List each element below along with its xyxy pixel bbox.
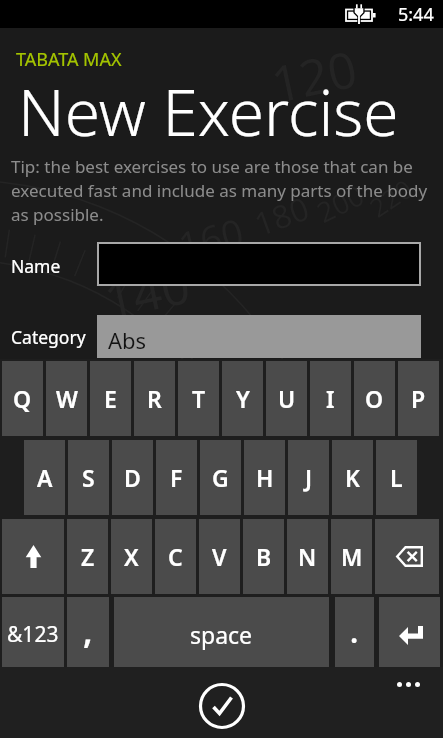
staticText: Q: [13, 383, 32, 414]
staticText: T: [192, 383, 206, 414]
button[interactable]: U: [266, 361, 307, 436]
staticText: space: [190, 619, 253, 650]
button[interactable]: &123: [2, 597, 64, 672]
staticText: A: [37, 462, 53, 493]
staticText: G: [212, 462, 229, 493]
staticText: Abs: [108, 325, 147, 355]
button[interactable]: M: [331, 519, 372, 594]
staticText: Z: [81, 541, 95, 572]
staticText: Tip: the best exercises to use are those…: [11, 155, 431, 226]
staticText: 160: [173, 205, 249, 271]
button[interactable]: Abs: [97, 315, 421, 358]
button[interactable]: F: [156, 440, 197, 515]
staticText: R: [147, 383, 162, 414]
button[interactable]: L: [376, 440, 417, 515]
button[interactable]: C: [155, 519, 196, 594]
staticText: L: [390, 462, 403, 493]
button[interactable]: More options: [389, 674, 428, 695]
button[interactable]: Q: [2, 361, 43, 436]
button[interactable]: K: [332, 440, 373, 515]
button[interactable]: D: [112, 440, 153, 515]
button[interactable]: Enter: [379, 597, 440, 672]
staticText: 140: [98, 250, 196, 334]
staticText: W: [56, 383, 78, 414]
staticText: P: [411, 383, 426, 414]
button[interactable]: J: [288, 440, 329, 515]
button[interactable]: O: [354, 361, 395, 436]
staticText: 120: [265, 34, 363, 118]
button[interactable]: [97, 242, 421, 286]
staticText: New Exercise: [18, 68, 399, 155]
button[interactable]: R: [134, 361, 175, 436]
staticText: V: [212, 541, 227, 572]
button[interactable]: Shift: [2, 519, 64, 594]
staticText: N: [298, 541, 317, 572]
staticText: C: [168, 541, 183, 572]
button[interactable]: P: [398, 361, 439, 436]
button[interactable]: A: [24, 440, 65, 515]
staticText: H: [256, 462, 274, 493]
staticText: TABATA MAX: [16, 47, 122, 72]
staticText: Category: [11, 325, 86, 349]
staticText: 220: [362, 170, 419, 225]
button[interactable]: B: [243, 519, 284, 594]
button[interactable]: T: [178, 361, 219, 436]
button[interactable]: ,: [67, 597, 109, 672]
staticText: D: [124, 462, 141, 493]
staticText: B: [256, 541, 272, 572]
button[interactable]: N: [287, 519, 328, 594]
button[interactable]: S: [68, 440, 109, 515]
staticText: E: [104, 383, 117, 414]
button[interactable]: G: [200, 440, 241, 515]
button[interactable]: W: [46, 361, 87, 436]
button[interactable]: I: [310, 361, 351, 436]
staticText: 200: [310, 175, 371, 231]
staticText: K: [345, 462, 360, 493]
staticText: Name: [11, 254, 61, 278]
staticText: U: [278, 383, 296, 414]
button[interactable]: X: [111, 519, 152, 594]
button[interactable]: Z: [67, 519, 108, 594]
staticText: ,: [83, 608, 93, 654]
staticText: X: [124, 541, 139, 572]
staticText: J: [305, 462, 313, 493]
button[interactable]: Y: [222, 361, 263, 436]
button[interactable]: V: [199, 519, 240, 594]
staticText: F: [170, 462, 183, 493]
button[interactable]: space: [114, 597, 329, 672]
staticText: 5:44: [398, 2, 434, 27]
button[interactable]: Backspace: [375, 519, 439, 594]
button[interactable]: H: [244, 440, 285, 515]
staticText: S: [82, 462, 95, 493]
staticText: 180: [248, 186, 315, 246]
button[interactable]: .: [335, 597, 374, 672]
staticText: I: [326, 383, 335, 414]
staticText: &123: [7, 620, 59, 649]
button[interactable]: E: [90, 361, 131, 436]
staticText: .: [350, 611, 359, 652]
button[interactable]: Accept: [197, 681, 247, 731]
staticText: O: [365, 383, 384, 414]
staticText: M: [341, 541, 363, 572]
staticText: Y: [236, 383, 250, 414]
